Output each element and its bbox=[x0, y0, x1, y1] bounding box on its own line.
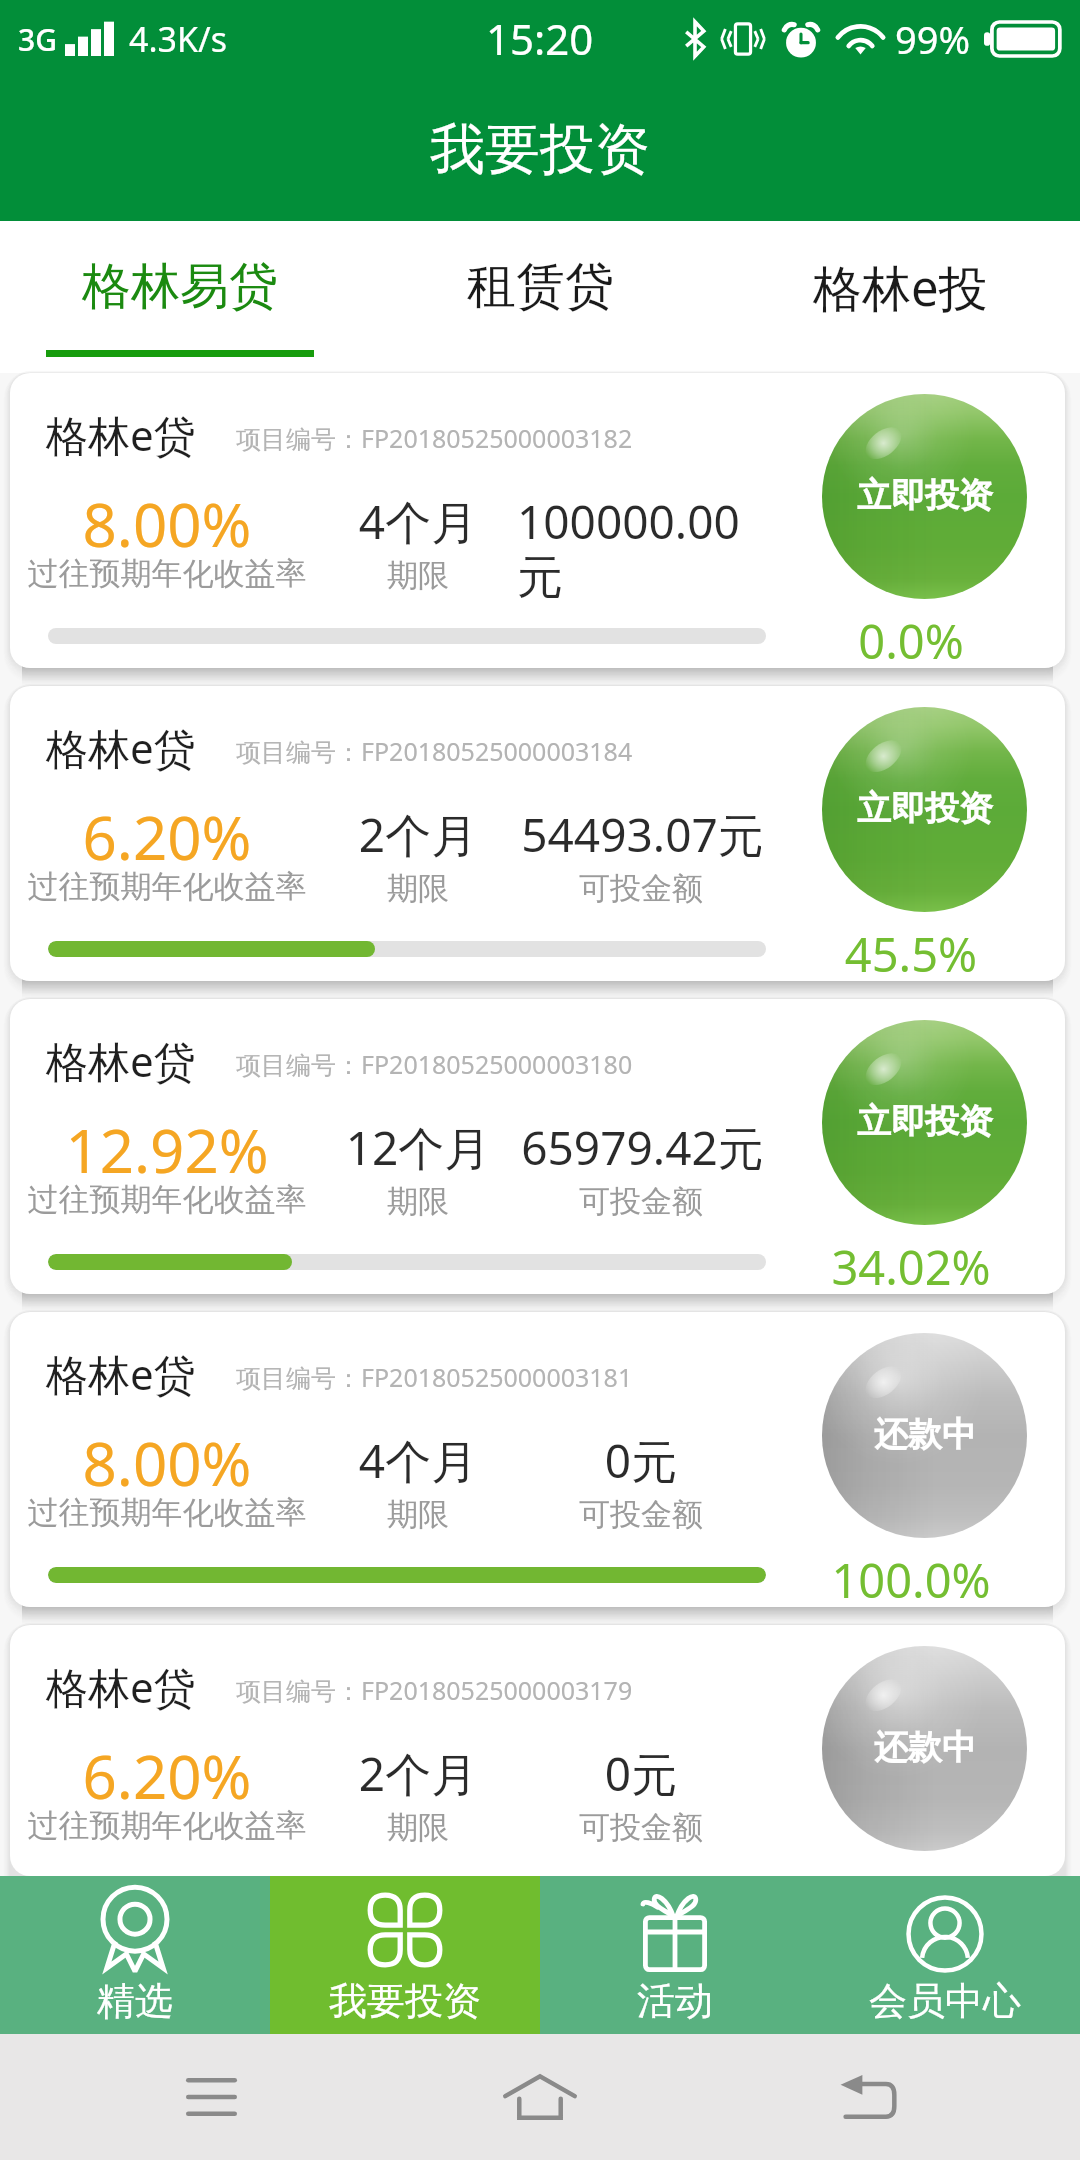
staticText: 格林易贷 bbox=[82, 256, 278, 318]
button[interactable]: 活动 bbox=[540, 1876, 810, 2034]
staticText: 12.92% bbox=[17, 1109, 317, 1191]
staticText: 8.00% bbox=[17, 483, 317, 565]
staticText: 65979.42元 bbox=[521, 1116, 761, 1179]
staticText: 项目编号：FP20180525000003184 bbox=[236, 734, 633, 768]
staticText: 期限 bbox=[318, 1182, 518, 1221]
button[interactable]: 还款中 bbox=[822, 1333, 1027, 1538]
staticText: 会员中心 bbox=[869, 1977, 1021, 2025]
staticText: 格林e贷 bbox=[46, 1345, 196, 1402]
staticText: 4个月 bbox=[318, 1429, 518, 1492]
staticText: 项目编号：FP20180525000003181 bbox=[236, 1360, 633, 1394]
staticText: 过往预期年化收益率 bbox=[17, 1806, 317, 1845]
staticText: 54493.07元 bbox=[521, 803, 761, 866]
staticText: 4个月 bbox=[318, 490, 518, 553]
staticText: 立即投资 bbox=[857, 1100, 993, 1143]
staticText: 可投金额 bbox=[521, 1182, 761, 1221]
staticText: 可投金额 bbox=[521, 1808, 761, 1847]
staticText: 格林e贷 bbox=[46, 1032, 196, 1089]
button[interactable]: Back bbox=[813, 2057, 923, 2137]
staticText: 过往预期年化收益率 bbox=[17, 554, 317, 593]
staticText: 2个月 bbox=[318, 803, 518, 866]
staticText: 34.02% bbox=[786, 1235, 1036, 1294]
staticText: 立即投资 bbox=[857, 474, 993, 517]
staticText: 12个月 bbox=[318, 1116, 518, 1179]
staticText: 可投金额 bbox=[521, 1495, 761, 1534]
button[interactable]: 格林易贷 bbox=[0, 221, 360, 373]
staticText: 0.0% bbox=[786, 609, 1036, 668]
staticText: 0元 bbox=[521, 1742, 761, 1805]
button[interactable]: 立即投资 bbox=[822, 707, 1027, 912]
button[interactable]: 还款中 bbox=[822, 1646, 1027, 1851]
staticText: 项目编号：FP20180525000003180 bbox=[236, 1047, 633, 1081]
staticText: 我要投资 bbox=[329, 1977, 481, 2025]
button[interactable]: 格林e投 bbox=[720, 221, 1080, 373]
staticText: 期限 bbox=[318, 1808, 518, 1847]
staticText: 100000.00 bbox=[517, 490, 740, 553]
staticText: 还款中 bbox=[874, 1726, 976, 1769]
button[interactable]: 立即投资 bbox=[822, 394, 1027, 599]
staticText: 0元 bbox=[521, 1429, 761, 1492]
staticText: 精选 bbox=[97, 1977, 173, 2025]
button[interactable]: 格林e贷 bbox=[10, 373, 1065, 668]
staticText: 100.0% bbox=[786, 1548, 1036, 1607]
staticText: 活动 bbox=[637, 1977, 713, 2025]
button[interactable]: 会员中心 bbox=[810, 1876, 1080, 2034]
staticText: 3G bbox=[18, 19, 57, 60]
staticText: 45.5% bbox=[786, 922, 1036, 981]
staticText: 过往预期年化收益率 bbox=[17, 1493, 317, 1532]
staticText: 立即投资 bbox=[857, 787, 993, 830]
staticText: 格林e贷 bbox=[46, 1658, 196, 1715]
staticText: 可投金额 bbox=[521, 869, 761, 908]
button[interactable]: 格林e贷 bbox=[10, 1625, 1065, 1876]
button[interactable]: Recent apps bbox=[156, 2057, 266, 2137]
staticText: 格林e投 bbox=[813, 254, 988, 321]
staticText: 格林e贷 bbox=[46, 719, 196, 776]
button[interactable]: 精选 bbox=[0, 1876, 270, 2034]
button[interactable]: 我要投资 bbox=[270, 1876, 540, 2034]
button[interactable]: 格林e贷 bbox=[10, 999, 1065, 1294]
staticText: 租赁贷 bbox=[467, 256, 614, 318]
staticText: 项目编号：FP20180525000003179 bbox=[236, 1673, 633, 1707]
button[interactable]: Home bbox=[485, 2057, 595, 2137]
staticText: 8.00% bbox=[17, 1422, 317, 1504]
staticText: 项目编号：FP20180525000003182 bbox=[236, 421, 633, 455]
staticText: 我要投资 bbox=[430, 115, 650, 184]
staticText: 期限 bbox=[318, 869, 518, 908]
button[interactable]: 立即投资 bbox=[822, 1020, 1027, 1225]
staticText: 2个月 bbox=[318, 1742, 518, 1805]
staticText: 过往预期年化收益率 bbox=[17, 867, 317, 906]
staticText: 元 bbox=[517, 549, 563, 607]
staticText: 过往预期年化收益率 bbox=[17, 1180, 317, 1219]
button[interactable]: 租赁贷 bbox=[360, 221, 720, 373]
staticText: 期限 bbox=[318, 556, 518, 595]
staticText: 99% bbox=[895, 13, 971, 65]
staticText: 期限 bbox=[318, 1495, 518, 1534]
staticText: 4.3K/s bbox=[129, 16, 227, 62]
staticText: 还款中 bbox=[874, 1413, 976, 1456]
button[interactable]: 格林e贷 bbox=[10, 686, 1065, 981]
button[interactable]: 格林e贷 bbox=[10, 1312, 1065, 1607]
staticText: 格林e贷 bbox=[46, 406, 196, 463]
staticText: 6.20% bbox=[17, 1735, 317, 1817]
staticText: 15:20 bbox=[486, 10, 594, 67]
staticText: 6.20% bbox=[17, 796, 317, 878]
